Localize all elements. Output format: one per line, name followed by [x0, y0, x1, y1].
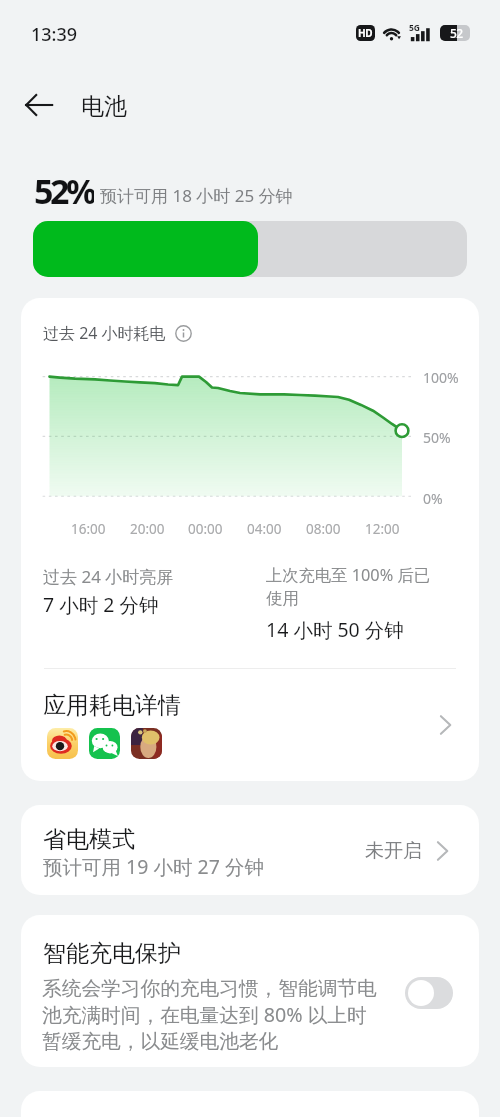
- button[interactable]: Back: [15, 81, 63, 129]
- staticText: 12:00: [365, 520, 400, 538]
- button[interactable]: 应用耗电详情: [21, 669, 479, 781]
- staticText: 52%: [34, 168, 94, 212]
- button[interactable]: Toggle smart charging: [405, 977, 453, 1009]
- staticText: 52: [450, 25, 463, 41]
- staticText: 00:00: [188, 520, 223, 538]
- staticText: 上次充电至 100% 后已 使用: [266, 564, 431, 609]
- staticText: 08:00: [306, 520, 341, 538]
- staticText: 预计可用 19 小时 27 分钟: [43, 853, 264, 880]
- staticText: 16:00: [71, 520, 106, 538]
- staticText: 100%: [423, 368, 459, 387]
- staticText: 未开启: [365, 839, 422, 863]
- staticText: 过去 24 小时亮屏: [43, 565, 174, 588]
- staticText: 14 小时 50 分钟: [266, 616, 404, 643]
- staticText: 智能充电保护: [43, 939, 181, 968]
- staticText: 电池: [81, 92, 127, 121]
- staticText: 应用耗电详情: [43, 691, 181, 720]
- staticText: 04:00: [247, 520, 282, 538]
- staticText: 系统会学习你的充电习惯，智能调节电 池充满时间，在电量达到 80% 以上时 暂缓…: [42, 976, 377, 1054]
- staticText: 7 小时 2 分钟: [43, 591, 159, 618]
- staticText: 5G: [409, 22, 421, 34]
- staticText: 省电模式: [43, 825, 135, 854]
- staticText: 20:00: [130, 520, 165, 538]
- staticText: 13:39: [31, 22, 78, 47]
- staticText: HD: [358, 26, 373, 40]
- button[interactable]: 省电模式: [21, 805, 479, 895]
- staticText: 50%: [423, 428, 451, 447]
- staticText: 预计可用 18 小时 25 分钟: [100, 184, 293, 207]
- staticText: 0%: [423, 489, 443, 508]
- staticText: 过去 24 小时耗电: [43, 322, 166, 344]
